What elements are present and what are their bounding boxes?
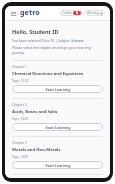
- staticText: 0: [76, 11, 78, 15]
- staticText: Start Learning: [45, 125, 71, 130]
- button[interactable]: Start Learning: [12, 161, 103, 169]
- staticText: getro: [20, 8, 40, 18]
- staticText: Acids, Bases and Salts: [12, 109, 58, 115]
- staticText: Please select the chapter and begin your…: [12, 45, 103, 55]
- staticText: You have selected Class 10 | Subject: Sc…: [12, 38, 84, 43]
- staticText: Warning: [87, 11, 99, 15]
- staticText: Tags: C3-E1: [12, 155, 29, 159]
- button[interactable]: Credits: [60, 10, 83, 16]
- button[interactable]: Start Learning: [12, 123, 103, 131]
- staticText: Chapter 1: [12, 65, 27, 69]
- staticText: Chapter 3: [12, 141, 27, 145]
- button[interactable]: Warning: [85, 10, 105, 16]
- staticText: Chemical Reactions and Equations: [12, 71, 84, 77]
- staticText: Chapter 2: [12, 103, 27, 107]
- staticText: Credits: [62, 11, 72, 15]
- button[interactable]: Menu: [10, 10, 17, 17]
- staticText: Tags: C1-E1: [12, 79, 29, 83]
- staticText: Tags: C2-E1: [12, 117, 29, 121]
- staticText: Metals and Non-Metals: [12, 147, 61, 153]
- staticText: Start Learning: [45, 87, 71, 92]
- button[interactable]: Start Learning: [12, 85, 103, 93]
- staticText: Start Learning: [45, 163, 71, 168]
- staticText: Hello, Student ID: [12, 28, 59, 35]
